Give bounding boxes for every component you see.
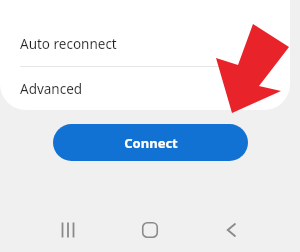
button[interactable]: Back (208, 207, 256, 252)
button[interactable]: Home (126, 207, 174, 252)
button[interactable]: Recent apps (44, 207, 92, 252)
staticText: Connect (124, 134, 178, 152)
button[interactable]: Advanced (0, 67, 290, 110)
staticText: Advanced (20, 80, 83, 98)
staticText: Auto reconnect (20, 35, 117, 53)
button[interactable]: Auto reconnect (0, 22, 290, 66)
button[interactable]: Connect (53, 124, 248, 161)
